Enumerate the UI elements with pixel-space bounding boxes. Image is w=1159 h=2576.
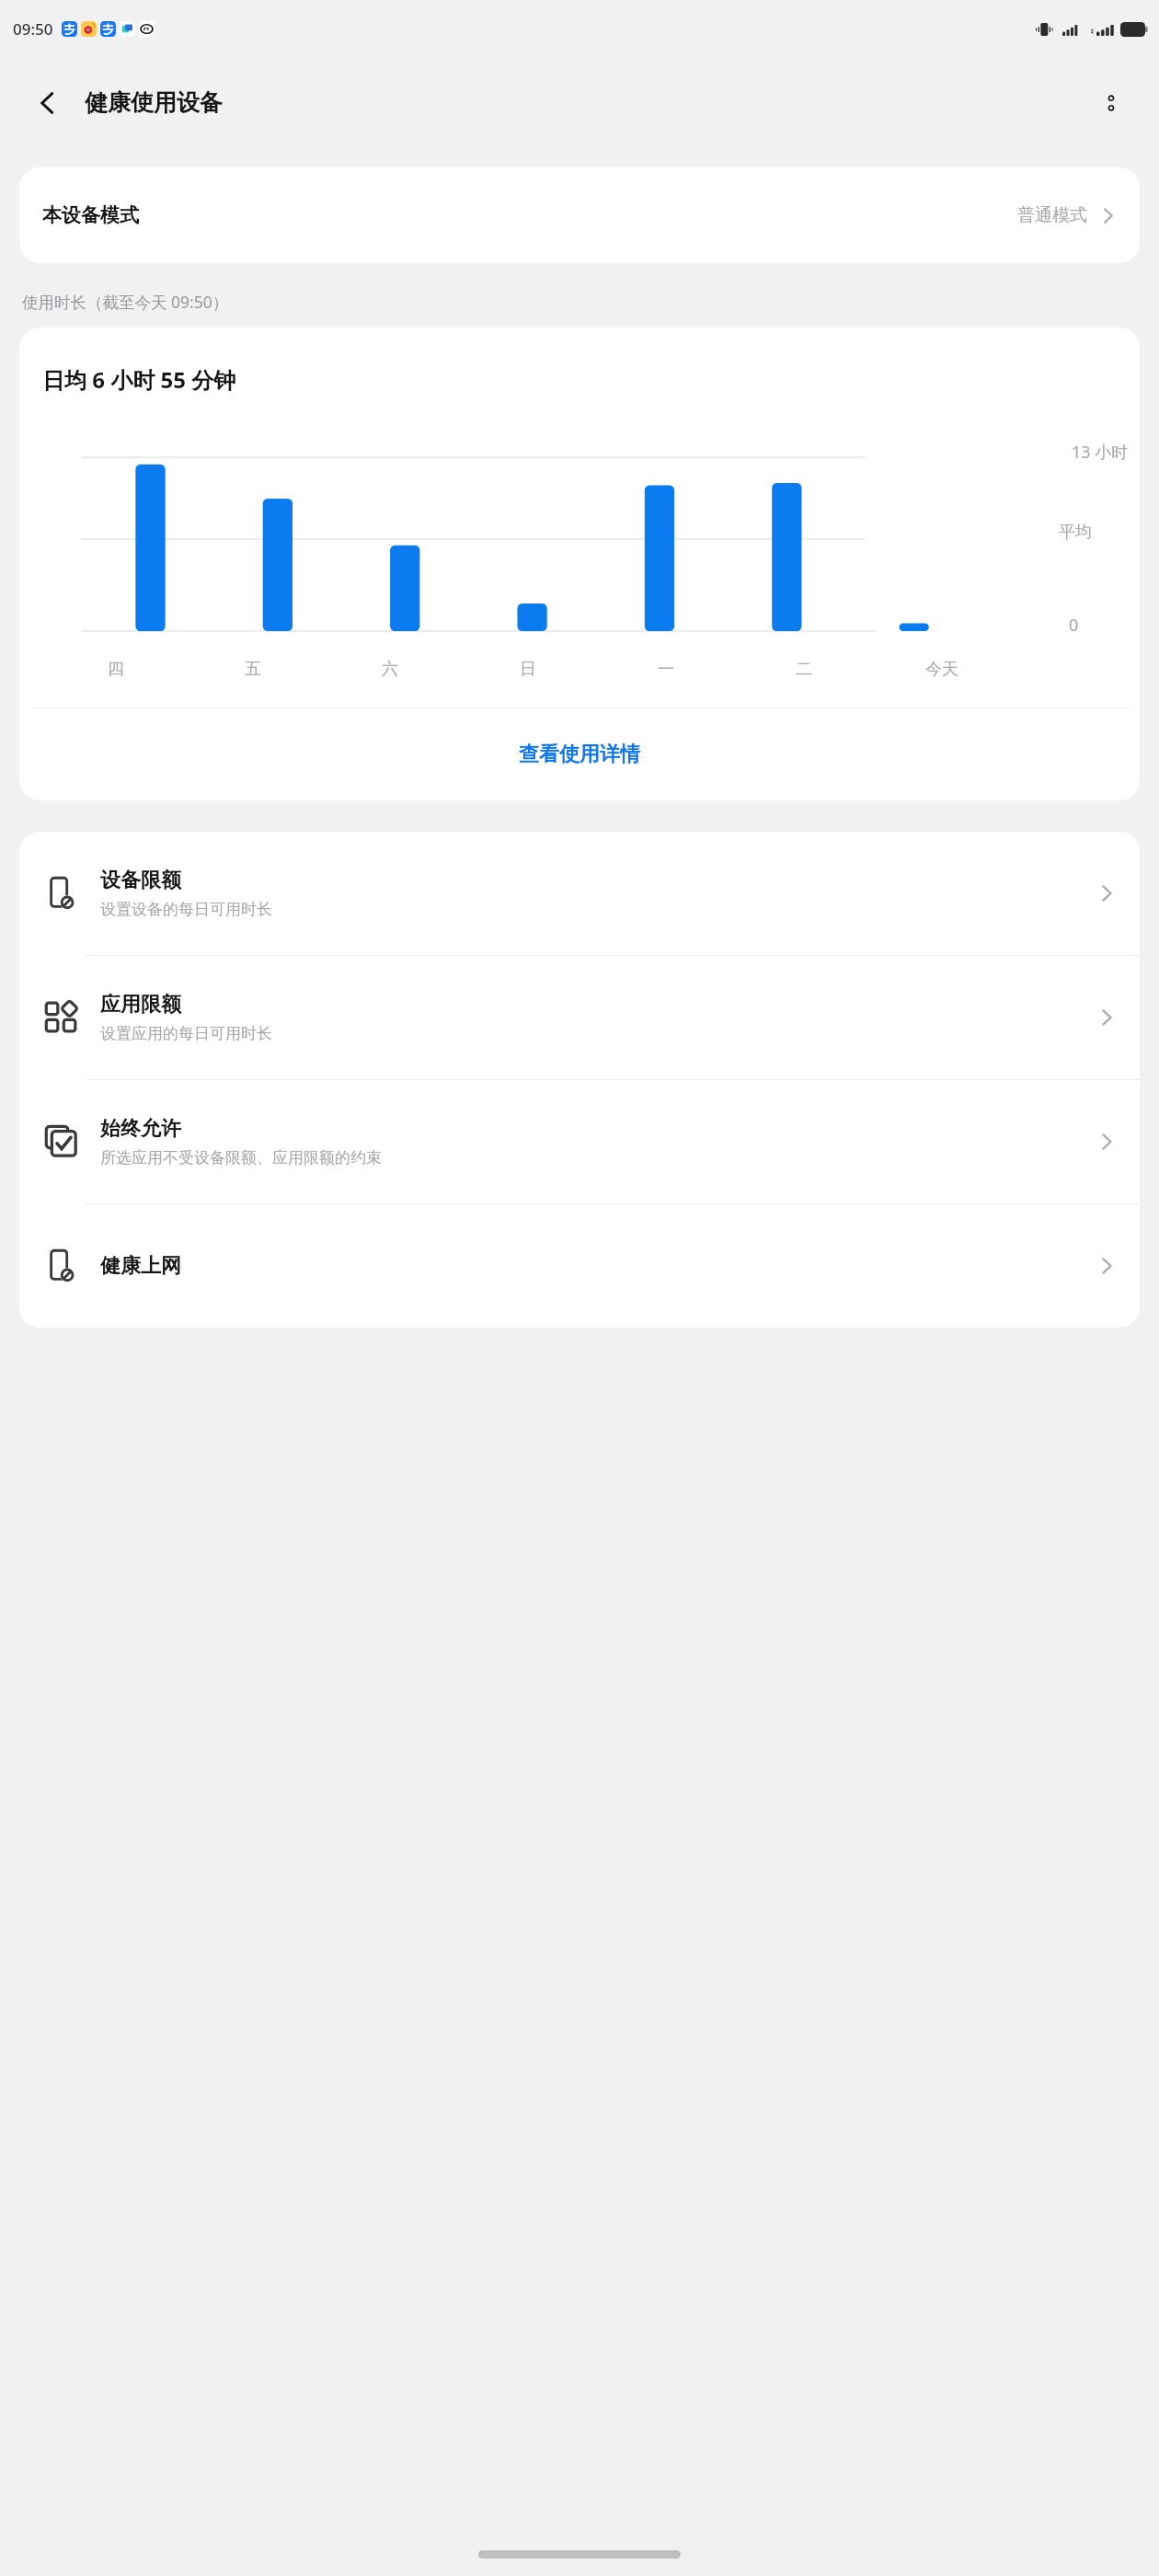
staticText: 一 (658, 659, 674, 680)
staticText: 五 (245, 659, 261, 680)
button[interactable]: 应用限额 (19, 956, 1140, 1079)
staticText: 使用时长（截至今天 09:50） (22, 291, 229, 313)
staticText: 本设备模式 (42, 203, 139, 227)
button[interactable]: 本设备模式 (19, 167, 1140, 263)
staticText: 平均 (1059, 522, 1092, 543)
staticText: 始终允许 (100, 1116, 181, 1142)
staticText: 健康上网 (100, 1253, 181, 1279)
staticText: 13 小时 (1072, 441, 1129, 464)
staticText: 日均 6 小时 55 分钟 (42, 364, 236, 395)
staticText: 设置应用的每日可用时长 (100, 1024, 272, 1043)
staticText: 四 (108, 659, 124, 680)
staticText: 所选应用不受设备限额、应用限额的约束 (100, 1148, 382, 1167)
staticText: 0 (1069, 614, 1079, 637)
staticText: 设置设备的每日可用时长 (100, 900, 272, 919)
button[interactable]: More options (1087, 79, 1135, 127)
staticText: 普通模式 (1017, 204, 1087, 226)
staticText: 今天 (925, 659, 958, 680)
staticText: 六 (382, 659, 398, 680)
button[interactable]: 始终允许 (19, 1080, 1140, 1203)
staticText: 09:50 (13, 18, 53, 40)
staticText: 二 (796, 659, 812, 680)
button[interactable]: 设备限额 (19, 832, 1140, 955)
button[interactable]: Back (24, 79, 72, 127)
button[interactable]: 健康上网 (19, 1204, 1140, 1328)
staticText: 健康使用设备 (85, 88, 223, 117)
staticText: 设备限额 (100, 868, 181, 893)
staticText: 应用限额 (100, 992, 181, 1018)
staticText: 查看使用详情 (519, 742, 640, 767)
button[interactable]: 查看使用详情 (19, 708, 1140, 800)
staticText: 日 (520, 659, 536, 680)
